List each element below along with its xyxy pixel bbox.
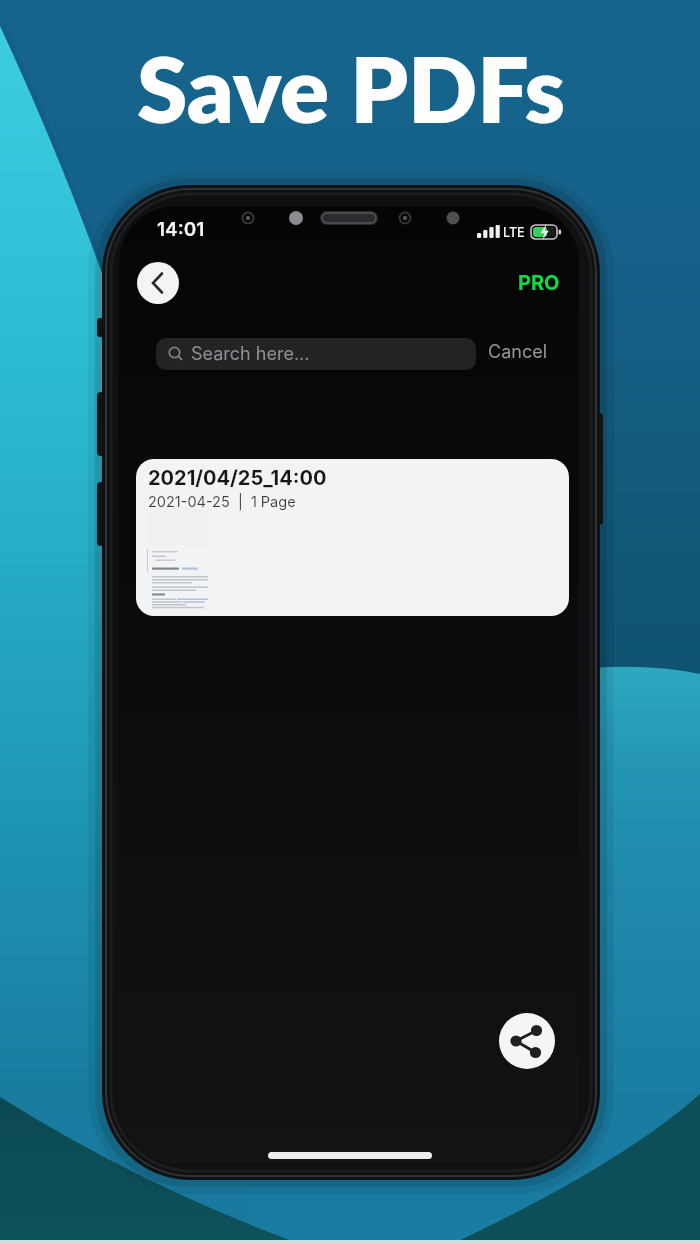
staticText: 2021/04/25_14:00 — [148, 466, 327, 490]
staticText: 14:01 — [157, 218, 205, 241]
staticText: PRO — [518, 271, 560, 295]
staticText: 2021-04-25 | 1 Page — [148, 493, 296, 511]
staticText: Search here... — [191, 343, 310, 365]
button[interactable]: Search here... — [156, 338, 476, 370]
button[interactable]: 2021/04/25_14:00 — [136, 459, 569, 616]
staticText: LTE — [503, 225, 525, 240]
staticText: Cancel — [488, 341, 548, 363]
staticText: Save PDFs — [137, 33, 566, 142]
button[interactable]: Cancel — [488, 341, 548, 363]
button[interactable] — [499, 1013, 555, 1069]
button[interactable]: PRO — [518, 271, 560, 295]
button[interactable] — [137, 262, 179, 304]
